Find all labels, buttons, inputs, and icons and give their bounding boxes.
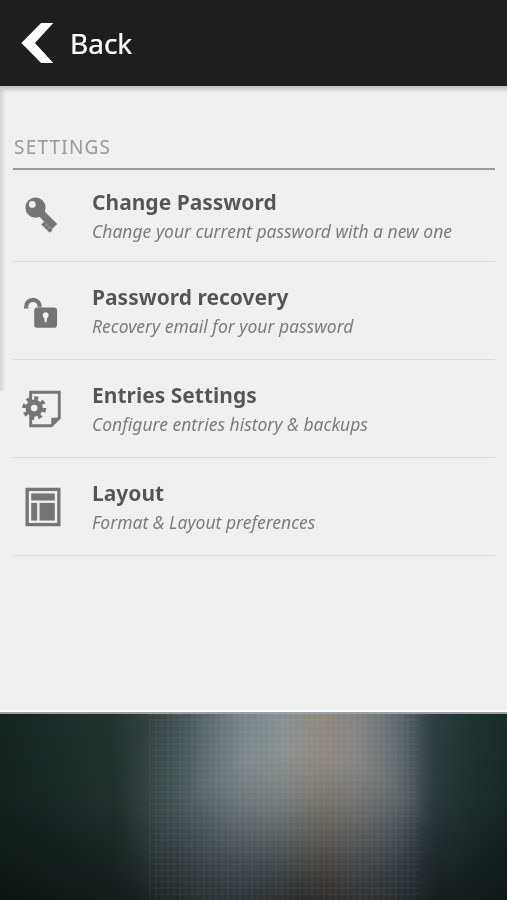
staticText: Back [70,24,133,62]
button[interactable]: Entries Settings [0,360,507,457]
staticText: Change your current password with a new … [92,219,453,243]
staticText: Layout [92,479,165,508]
staticText: Change Password [92,188,277,217]
button[interactable]: Change Password [0,170,507,261]
staticText: Format & Layout preferences [92,510,316,534]
staticText: Configure entries history & backups [92,412,368,436]
button[interactable]: Password recovery [0,262,507,359]
staticText: SETTINGS [14,134,112,160]
button[interactable]: Layout [0,458,507,555]
staticText: Recovery email for your password [92,314,354,338]
staticText: Password recovery [92,283,289,312]
staticText: Entries Settings [92,381,257,410]
button[interactable]: Back [8,14,66,72]
